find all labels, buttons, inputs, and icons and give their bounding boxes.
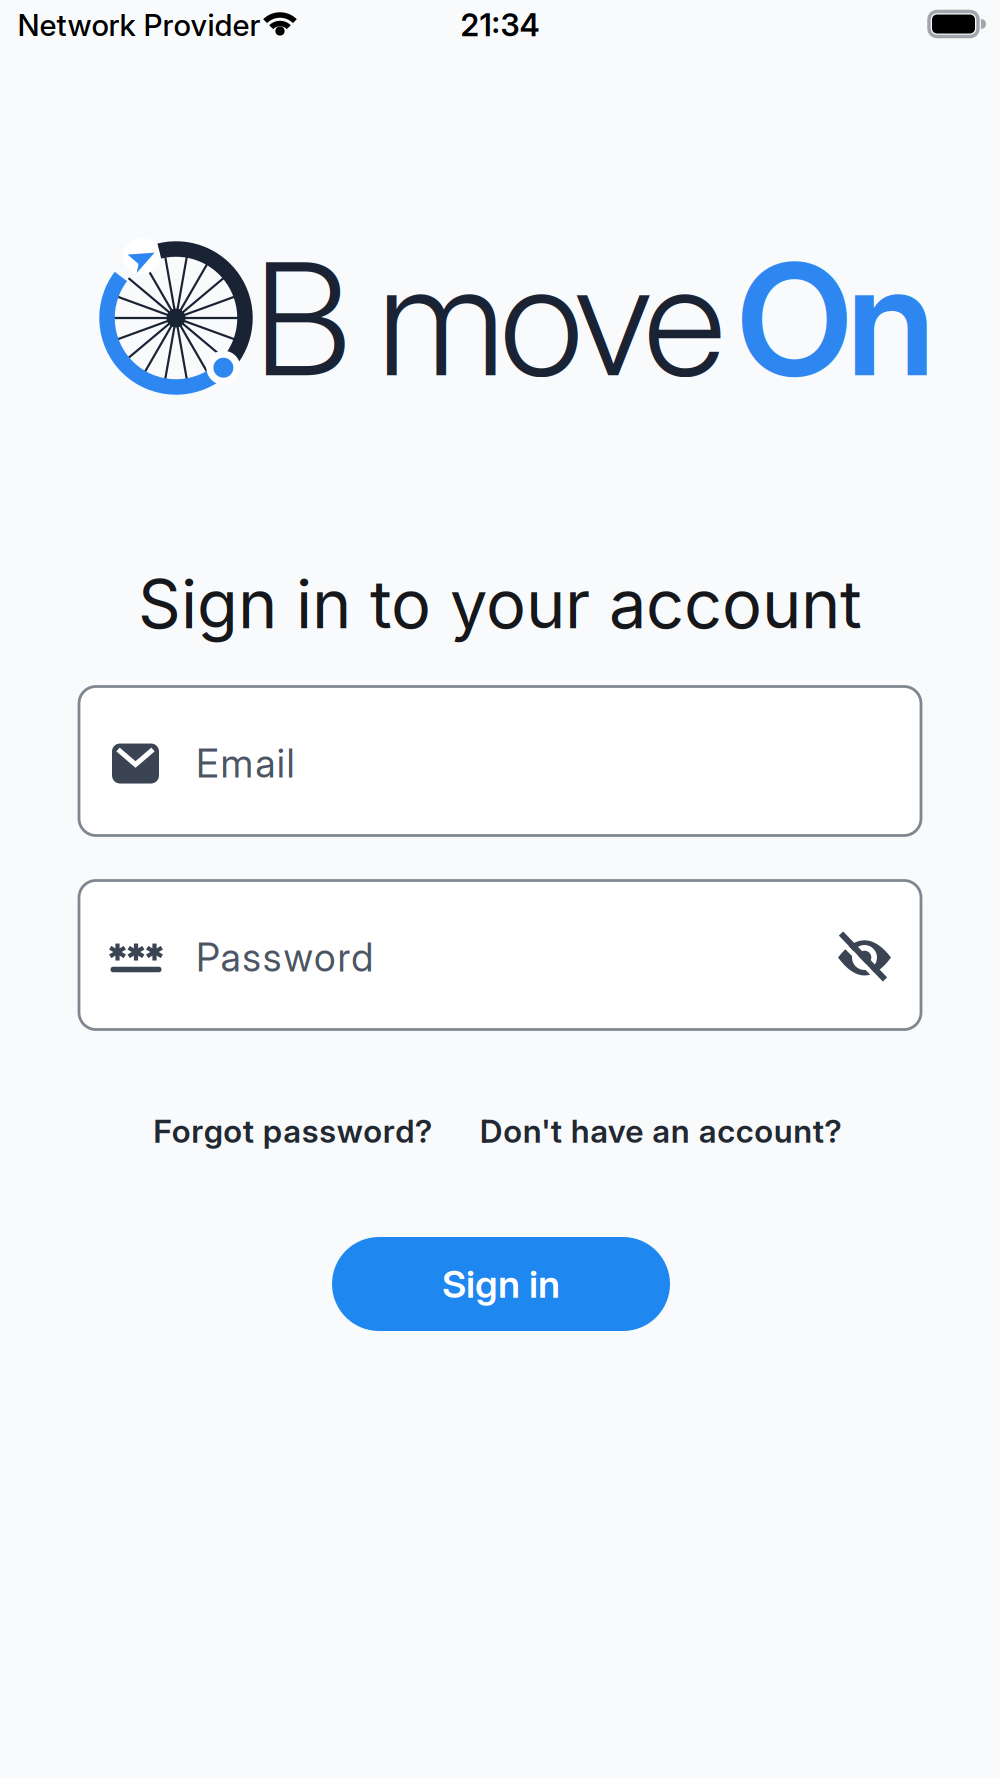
staticText: B move	[254, 225, 726, 412]
staticText: On	[736, 225, 935, 412]
button[interactable]: Forgot password?	[153, 1112, 433, 1150]
button[interactable]: Sign in	[332, 1237, 670, 1331]
button[interactable]: Password	[79, 880, 921, 1029]
staticText: 21:34	[460, 7, 539, 43]
button[interactable]: Don't have an account?	[480, 1112, 842, 1150]
button[interactable]: Email	[79, 686, 921, 835]
staticText: Email	[196, 741, 294, 786]
staticText: Network Provider	[17, 7, 260, 43]
staticText: Sign in to your account	[138, 565, 862, 643]
button[interactable]	[838, 934, 891, 980]
staticText: Sign in	[442, 1262, 560, 1306]
staticText: Forgot password?	[153, 1112, 433, 1150]
staticText: Password	[196, 935, 373, 980]
staticText: Don't have an account?	[480, 1112, 842, 1150]
